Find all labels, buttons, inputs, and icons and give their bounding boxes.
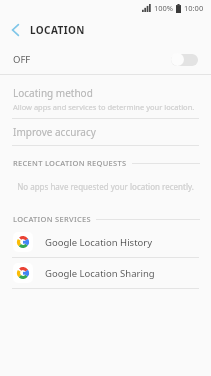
staticText: 10:00 <box>184 3 204 13</box>
staticText: LOCATION <box>30 23 85 37</box>
staticText: Improve accuracy <box>13 125 96 139</box>
staticText: No apps have requested your location rec… <box>17 181 194 192</box>
button[interactable]: OFF <box>0 44 211 74</box>
button[interactable]: Google Location History <box>0 227 211 257</box>
staticText: Google Location History <box>45 236 153 249</box>
staticText: Locating method <box>13 86 93 100</box>
button[interactable]: Improve accuracy <box>0 119 211 145</box>
staticText: LOCATION SERVICES <box>13 214 91 224</box>
staticText: 100% <box>154 3 174 13</box>
button[interactable]: Locating method <box>0 82 211 118</box>
staticText: RECENT LOCATION REQUESTS <box>13 158 127 168</box>
staticText: OFF <box>13 53 31 66</box>
button[interactable]: Back <box>0 16 30 44</box>
staticText: Allow apps and services to determine you… <box>13 102 195 112</box>
button[interactable]: Google Location Sharing <box>0 258 211 288</box>
staticText: Google Location Sharing <box>45 267 155 280</box>
